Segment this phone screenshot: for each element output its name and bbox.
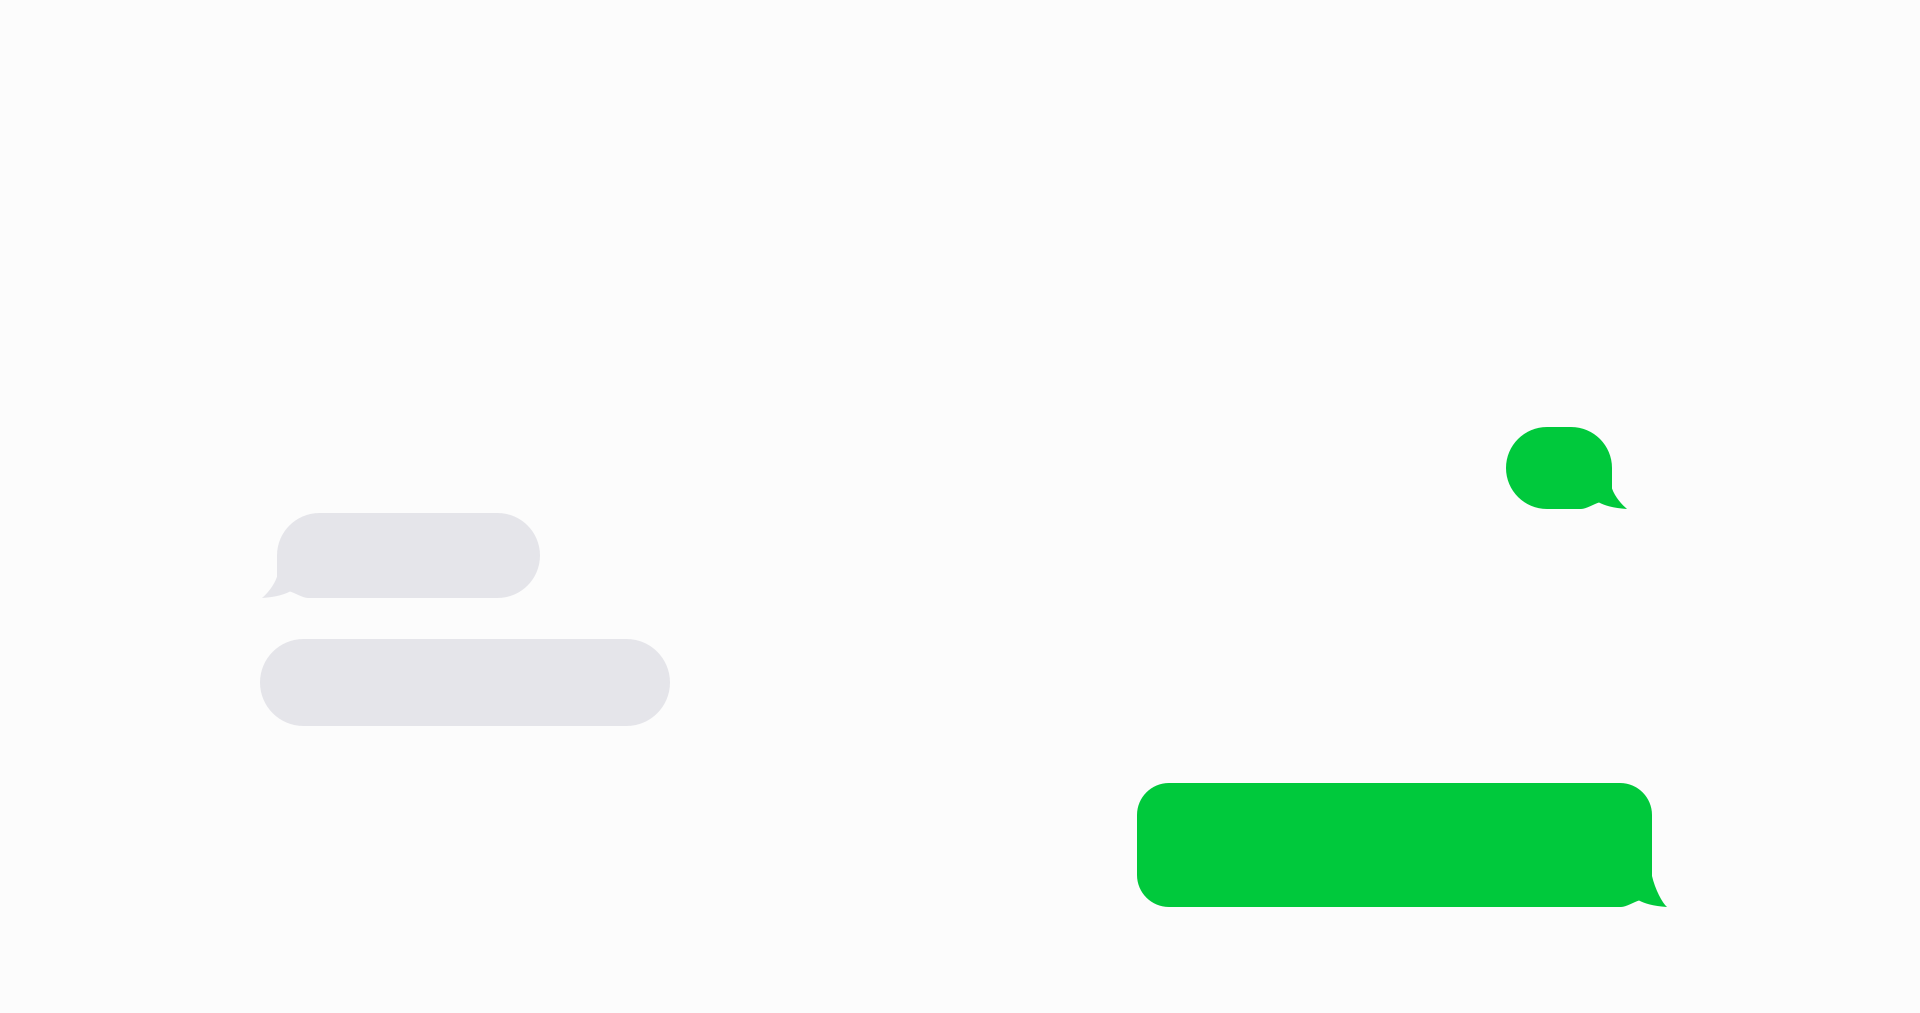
button[interactable]: Sent message [1137,783,1667,907]
button[interactable]: Received message [260,639,670,726]
button[interactable]: Received message [262,513,540,598]
button[interactable]: Sent message [1506,427,1627,509]
